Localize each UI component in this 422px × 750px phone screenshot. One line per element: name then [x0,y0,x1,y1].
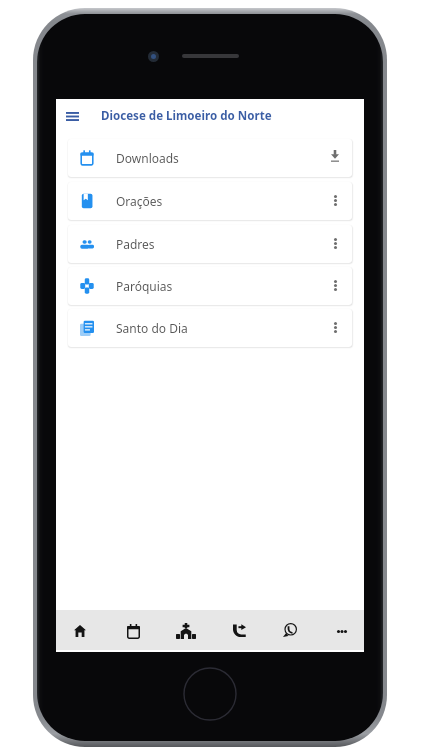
button[interactable]: Open navigation menu [61,105,83,127]
button[interactable]: Churches [160,610,212,650]
button[interactable]: Padres [68,225,352,263]
staticText: Santo do Dia [116,320,188,336]
staticText: Downloads [116,150,179,166]
button[interactable]: Paróquias [68,267,352,305]
button[interactable]: Santo do Dia [68,309,352,347]
button[interactable]: More options [323,190,345,212]
button[interactable]: More options [323,317,345,339]
button[interactable]: Calendar [107,610,159,650]
button[interactable]: Home [54,610,106,650]
button[interactable]: WhatsApp [264,610,316,650]
staticText: Orações [116,193,163,209]
staticText: Diocese de Limoeiro do Norte [101,108,272,124]
button[interactable]: Downloads [68,139,352,177]
staticText: Paróquias [116,278,173,294]
button[interactable]: Orações [68,182,352,220]
button[interactable]: Download [323,147,345,169]
button[interactable]: More options [323,233,345,255]
button[interactable]: More options [323,275,345,297]
button[interactable]: More [316,610,368,650]
staticText: Padres [116,236,155,252]
button[interactable]: Call [213,610,265,650]
